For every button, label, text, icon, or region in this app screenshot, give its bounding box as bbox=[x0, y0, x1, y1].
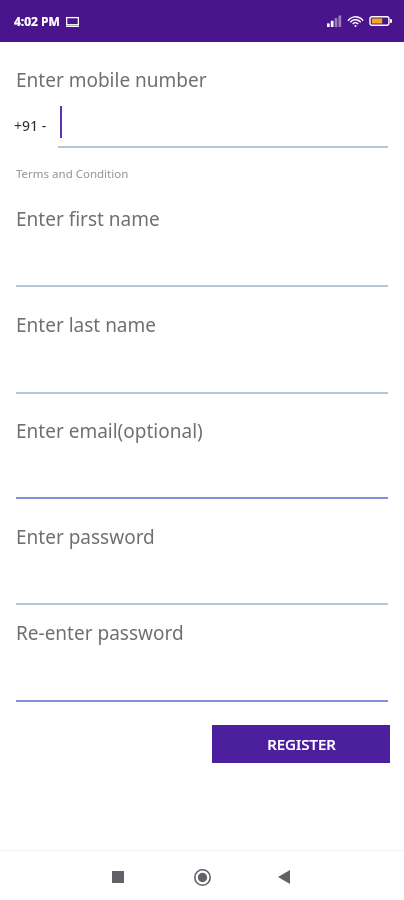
staticText: Terms and Condition bbox=[16, 166, 129, 182]
button[interactable]: Terms and Condition bbox=[16, 166, 129, 182]
button[interactable] bbox=[0, 612, 404, 708]
staticText: Enter password bbox=[16, 524, 155, 550]
staticText: Enter last name bbox=[16, 312, 157, 338]
button[interactable]: Recent apps bbox=[98, 857, 138, 897]
button[interactable] bbox=[0, 304, 404, 400]
staticText: Enter mobile number bbox=[16, 67, 207, 93]
staticText: Re-enter password bbox=[16, 620, 184, 646]
button[interactable]: REGISTER bbox=[212, 725, 390, 763]
button[interactable] bbox=[0, 410, 404, 505]
staticText: 4:02 PM bbox=[14, 13, 60, 29]
button[interactable]: Home bbox=[182, 857, 222, 897]
button[interactable] bbox=[0, 516, 404, 611]
button[interactable]: Back bbox=[264, 857, 304, 897]
staticText: +91 - bbox=[14, 116, 47, 135]
button[interactable] bbox=[0, 198, 404, 293]
staticText: Enter first name bbox=[16, 206, 160, 232]
staticText: Enter email(optional) bbox=[16, 418, 203, 444]
staticText: REGISTER bbox=[267, 734, 336, 754]
